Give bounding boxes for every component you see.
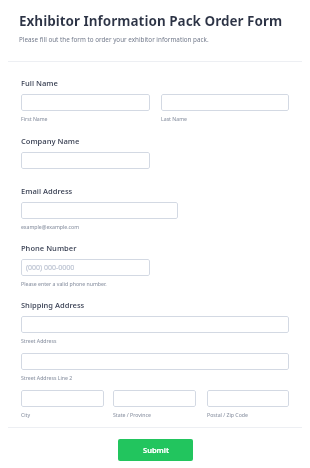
staticText: Street Address Line 2 (21, 374, 73, 381)
staticText: Postal / Zip Code (207, 411, 248, 418)
button[interactable] (21, 202, 178, 219)
button[interactable]: (000) 000-0000 (21, 259, 150, 276)
staticText: Email Address (21, 186, 73, 196)
staticText: (000) 000-0000 (26, 263, 75, 273)
staticText: Submit (143, 445, 169, 455)
button[interactable] (207, 390, 289, 407)
button[interactable] (21, 316, 289, 333)
staticText: Street Address (21, 337, 57, 344)
staticText: Shipping Address (21, 300, 85, 310)
staticText: Phone Number (21, 243, 77, 253)
button[interactable] (21, 390, 104, 407)
button[interactable] (21, 353, 289, 370)
button[interactable] (21, 94, 150, 111)
staticText: Full Name (21, 78, 58, 88)
button[interactable] (113, 390, 196, 407)
button[interactable]: Submit (118, 439, 193, 461)
staticText: First Name (21, 115, 48, 122)
staticText: Please enter a valid phone number. (21, 280, 107, 287)
staticText: Company Name (21, 136, 80, 146)
staticText: City (21, 411, 31, 418)
staticText: Last Name (161, 115, 187, 122)
button[interactable] (161, 94, 289, 111)
staticText: example@example.com (21, 223, 80, 230)
staticText: State / Province (113, 411, 151, 418)
button[interactable] (21, 152, 150, 169)
staticText: Please fill out the form to order your e… (19, 35, 209, 44)
staticText: Exhibitor Information Pack Order Form (19, 12, 283, 30)
